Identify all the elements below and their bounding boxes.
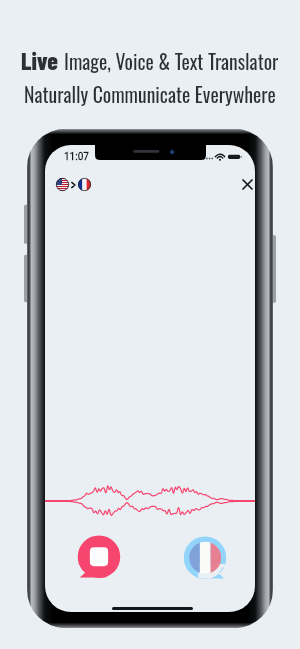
staticText: Naturally Communicate Everywhere xyxy=(24,79,276,108)
button[interactable]: French xyxy=(182,535,228,581)
button[interactable]: Stop recording xyxy=(76,534,122,580)
staticText: Live xyxy=(21,46,59,75)
staticText: Image, Voice & Text Translator xyxy=(64,46,279,75)
staticText: 11:07 xyxy=(64,151,89,163)
button[interactable]: Close xyxy=(236,173,255,195)
button[interactable] xyxy=(54,175,93,194)
